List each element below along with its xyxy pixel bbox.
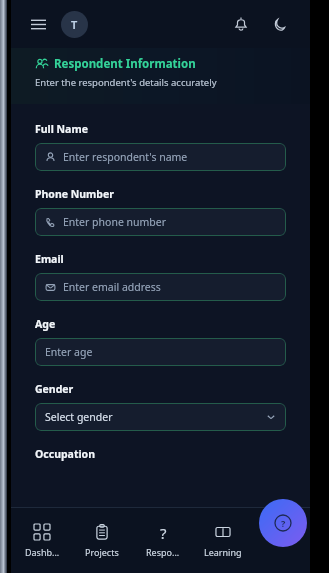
button[interactable]: Notifications (226, 9, 256, 39)
staticText: Enter email address (63, 280, 161, 294)
button[interactable]: Dashb... (13, 507, 71, 573)
staticText: Enter the respondent's details accuratel… (35, 76, 217, 89)
staticText: Enter age (45, 345, 93, 359)
staticText: Age (35, 317, 56, 331)
button[interactable]: Help (259, 499, 307, 547)
staticText: Learning (204, 546, 242, 558)
button[interactable]: Menu (25, 11, 51, 37)
button[interactable]: Projects (73, 507, 131, 573)
staticText: Respondent Information (54, 56, 196, 72)
staticText: Respo... (146, 546, 180, 558)
button[interactable]: Enter age (35, 338, 286, 366)
staticText: Full Name (35, 122, 88, 136)
staticText: T (71, 17, 78, 32)
button[interactable]: Profile (61, 11, 88, 38)
staticText: Dashb... (25, 546, 60, 558)
staticText: Email (35, 252, 64, 266)
button[interactable]: Toggle dark mode (266, 9, 296, 39)
staticText: ? (160, 523, 167, 541)
staticText: Enter respondent's name (63, 150, 188, 164)
button[interactable]: Enter respondent's name (35, 143, 286, 171)
button[interactable]: Enter email address (35, 273, 286, 301)
button[interactable]: Enter phone number (35, 208, 286, 236)
staticText: Projects (85, 546, 119, 558)
staticText: Select gender (45, 410, 113, 424)
staticText: ? (281, 517, 286, 529)
button[interactable]: Select gender (35, 403, 286, 431)
staticText: Phone Number (35, 187, 114, 201)
staticText: Occupation (35, 447, 95, 461)
button[interactable]: Learning (194, 507, 252, 573)
staticText: Enter phone number (63, 215, 167, 229)
button[interactable]: ? (134, 507, 192, 573)
staticText: Gender (35, 382, 74, 396)
